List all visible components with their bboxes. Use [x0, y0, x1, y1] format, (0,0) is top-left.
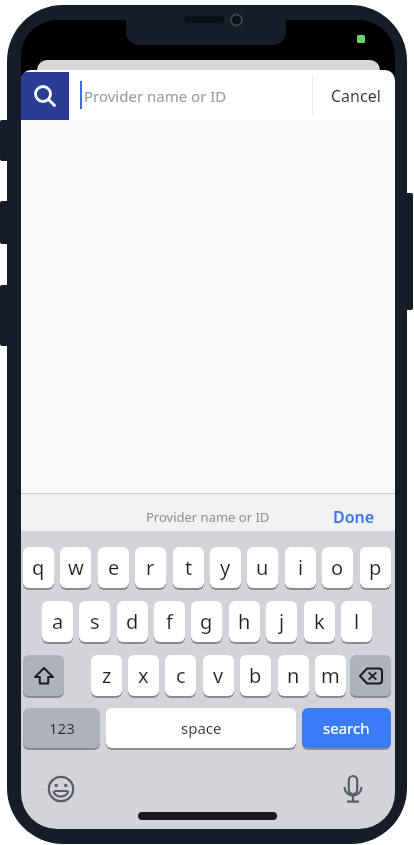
staticText: x	[138, 662, 149, 689]
button[interactable]: y	[210, 547, 241, 588]
staticText: Done	[333, 506, 375, 528]
staticText: d	[126, 608, 139, 635]
button[interactable]	[339, 773, 367, 807]
staticText: Cancel	[331, 85, 381, 107]
staticText: l	[354, 608, 360, 635]
button[interactable]: 123	[23, 708, 100, 748]
button[interactable]: Done	[321, 498, 387, 535]
button[interactable]	[47, 775, 75, 803]
button[interactable]: r	[135, 547, 166, 588]
button[interactable]	[350, 655, 391, 696]
button[interactable]: g	[191, 601, 222, 642]
staticText: g	[200, 608, 213, 635]
button[interactable]: e	[98, 547, 129, 588]
staticText: h	[238, 608, 251, 635]
button[interactable]: t	[173, 547, 204, 588]
button[interactable]: a	[42, 601, 73, 642]
button[interactable]: p	[360, 547, 391, 588]
staticText: c	[176, 662, 186, 689]
staticText: i	[298, 554, 304, 581]
button[interactable]: v	[203, 655, 234, 696]
staticText: n	[287, 662, 300, 689]
button[interactable]: Cancel	[316, 72, 395, 120]
staticText: r	[146, 554, 155, 581]
button[interactable]: d	[117, 601, 148, 642]
staticText: q	[32, 554, 45, 581]
button[interactable]: h	[229, 601, 260, 642]
staticText: y	[220, 554, 231, 581]
button[interactable]: i	[285, 547, 316, 588]
button[interactable]: q	[23, 547, 54, 588]
staticText: k	[314, 608, 325, 635]
button[interactable]: w	[60, 547, 91, 588]
staticText: o	[331, 554, 344, 581]
button[interactable]: o	[322, 547, 353, 588]
staticText: w	[68, 554, 84, 581]
staticText: j	[279, 608, 285, 635]
staticText: z	[102, 662, 112, 689]
staticText: p	[369, 554, 382, 581]
staticText: Provider name or ID	[146, 508, 270, 526]
staticText: search	[323, 718, 370, 738]
button[interactable]: u	[247, 547, 278, 588]
button[interactable]: f	[154, 601, 185, 642]
staticText: f	[166, 608, 173, 635]
staticText: t	[185, 554, 193, 581]
staticText: a	[52, 608, 64, 635]
button[interactable]: l	[341, 601, 372, 642]
button[interactable]: c	[165, 655, 196, 696]
button[interactable]: s	[79, 601, 110, 642]
staticText: u	[256, 554, 269, 581]
button[interactable]: n	[278, 655, 309, 696]
staticText: s	[90, 608, 100, 635]
staticText: space	[181, 718, 222, 738]
button[interactable]: space	[106, 708, 296, 748]
staticText: e	[108, 554, 120, 581]
button[interactable]	[23, 655, 64, 696]
staticText: b	[249, 662, 262, 689]
button[interactable]: m	[315, 655, 346, 696]
staticText: 123	[49, 718, 75, 738]
button[interactable]: z	[91, 655, 122, 696]
button[interactable]: x	[128, 655, 159, 696]
staticText: Provider name or ID	[84, 86, 227, 106]
button[interactable]: k	[304, 601, 335, 642]
button[interactable]	[21, 72, 69, 120]
staticText: v	[213, 662, 224, 689]
staticText: m	[321, 662, 340, 689]
button[interactable]: b	[240, 655, 271, 696]
button[interactable]: j	[266, 601, 297, 642]
button[interactable]: search	[302, 708, 391, 748]
